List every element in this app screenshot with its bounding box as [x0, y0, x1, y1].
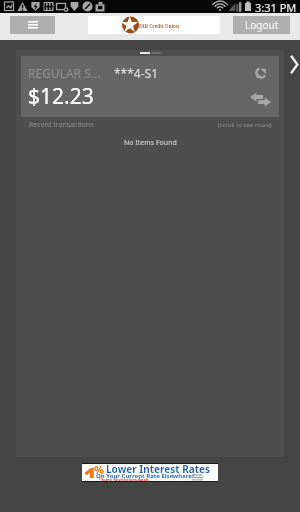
staticText: No Items Found: [124, 138, 177, 148]
button[interactable]: Transfer: [248, 87, 272, 111]
staticText: %: [94, 463, 104, 477]
button[interactable]: Menu: [10, 16, 55, 34]
button[interactable]: REGULAR S...: [21, 56, 279, 117]
button[interactable]: Logout: [233, 16, 290, 34]
staticText: $12.23: [28, 82, 94, 111]
staticText: On Your Current Rate Elsewhere*: [96, 472, 196, 480]
staticText: 1: [83, 463, 98, 478]
staticText: (scroll to see more): [218, 121, 272, 129]
staticText: ***4-S1: [114, 65, 159, 81]
staticText: REGULAR S...: [28, 65, 101, 81]
staticText: STAR Credit Union: [136, 23, 179, 29]
staticText: Lower Interest Rates: [106, 463, 211, 476]
button[interactable]: Advertisement: [82, 463, 218, 482]
staticText: Recent transactions: [29, 120, 94, 130]
button[interactable]: Refresh: [251, 63, 271, 83]
staticText: 3:31 PM: [255, 0, 297, 13]
staticText: *Some Restrictions Apply: [99, 477, 150, 482]
staticText: Logout: [245, 18, 279, 32]
button[interactable]: Next account: [286, 55, 298, 74]
button[interactable]: STAR Credit Union: [88, 16, 220, 34]
